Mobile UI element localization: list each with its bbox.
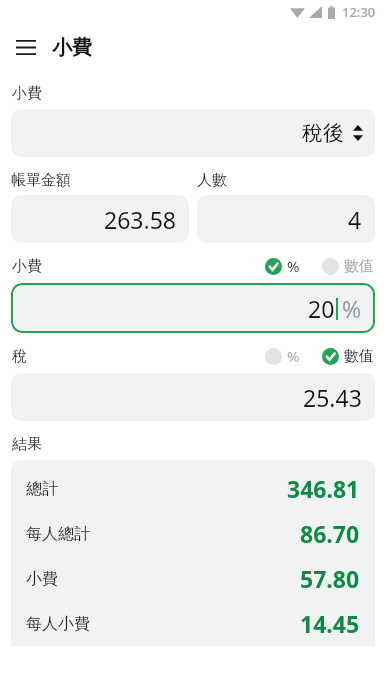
staticText: %	[287, 346, 300, 366]
staticText: 25.43	[303, 382, 362, 413]
staticText: 4	[348, 204, 362, 235]
staticText: 346.81	[287, 473, 360, 504]
staticText: 每人總計	[26, 524, 90, 544]
staticText: 帳單金額	[11, 171, 71, 190]
button[interactable]: 4	[197, 195, 375, 243]
button[interactable]: 每人總計	[11, 511, 375, 556]
staticText: 小費	[12, 84, 42, 103]
staticText: 結果	[12, 435, 42, 454]
staticText: 小費	[26, 569, 58, 589]
staticText: 數值	[344, 347, 374, 366]
button[interactable]: 總計	[11, 466, 375, 511]
staticText: 57.80	[300, 563, 360, 594]
staticText: 小費	[52, 35, 92, 60]
button[interactable]: 稅後	[11, 109, 375, 157]
staticText: %	[342, 293, 362, 324]
button[interactable]: 20	[11, 283, 375, 333]
staticText: 人數	[197, 171, 227, 190]
staticText: 86.70	[300, 518, 360, 549]
staticText: 每人小費	[26, 614, 90, 634]
button[interactable]: %	[265, 256, 300, 276]
staticText: %	[287, 256, 300, 276]
staticText: 稅	[12, 347, 27, 366]
button[interactable]: %	[265, 346, 300, 366]
button[interactable]: 263.58	[11, 195, 189, 243]
staticText: 20	[308, 293, 335, 324]
button[interactable]: 數值	[322, 347, 374, 366]
button[interactable]: 數值	[322, 257, 374, 276]
button[interactable]: 25.43	[11, 373, 375, 421]
button[interactable]: Open navigation menu	[6, 27, 46, 67]
button[interactable]: 每人小費	[11, 601, 375, 646]
staticText: 12:30	[342, 3, 376, 21]
staticText: 263.58	[104, 204, 176, 235]
staticText: 稅後	[302, 120, 344, 146]
staticText: 總計	[26, 479, 58, 499]
staticText: 14.45	[300, 608, 360, 639]
staticText: 小費	[12, 257, 42, 276]
button[interactable]: 小費	[11, 556, 375, 601]
staticText: 數值	[344, 257, 374, 276]
